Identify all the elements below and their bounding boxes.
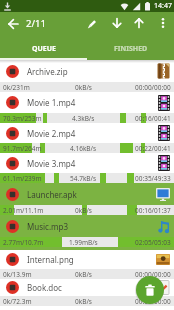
staticText: 4.3kB/s <box>72 114 95 123</box>
staticText: 61.1m/239m <box>3 174 42 183</box>
staticText: 0kB/s <box>75 297 92 306</box>
staticText: Movie 2.mp4 <box>27 128 76 139</box>
staticText: Movie 1.mp4 <box>27 97 76 108</box>
button[interactable]: Launcher.apk <box>0 183 174 215</box>
staticText: 2/11 <box>26 17 46 30</box>
staticText: 2.01m/11.1m <box>3 206 44 215</box>
button[interactable]: FINISHED <box>87 34 174 60</box>
staticText: 00:16/01:37 <box>135 206 171 215</box>
button[interactable]: Movie 3.mp4 <box>0 153 174 183</box>
staticText: 00:00/00:00 <box>135 83 171 92</box>
button[interactable]: Movie 2.mp4 <box>0 123 174 153</box>
staticText: Internal.png <box>27 254 74 265</box>
staticText: 00:00/00:00 <box>135 297 171 306</box>
staticText: 14:47 <box>154 1 172 11</box>
staticText: Launcher.apk <box>27 189 77 200</box>
button[interactable]: QUEUE <box>0 34 87 60</box>
staticText: FINISHED <box>114 44 148 54</box>
button[interactable]: Movie 1.mp4 <box>0 92 174 123</box>
staticText: 70.3m/253m <box>3 114 42 123</box>
button[interactable]: Internal.png <box>0 250 174 279</box>
staticText: Music.mp3 <box>27 221 69 232</box>
button[interactable] <box>131 15 147 31</box>
button[interactable] <box>109 15 125 31</box>
staticText: Book.doc <box>27 282 62 293</box>
staticText: 0k/231m <box>3 83 30 92</box>
staticText: 00:22/00:41 <box>135 144 171 153</box>
button[interactable] <box>155 15 171 31</box>
staticText: Movie 3.mp4 <box>27 158 76 169</box>
staticText: 91.7m/264m <box>3 144 42 153</box>
staticText: 0k/72.3m <box>3 297 32 306</box>
button[interactable] <box>4 15 21 32</box>
staticText: 54.7kB/s <box>70 174 97 183</box>
staticText: 0kB/s <box>75 83 92 92</box>
button[interactable]: Archive.zip <box>0 60 174 92</box>
staticText: 0k/13.9m <box>3 270 32 279</box>
staticText: Archive.zip <box>27 66 68 77</box>
staticText: 2.77m/10.7m <box>3 238 44 247</box>
button[interactable] <box>84 15 100 31</box>
staticText: 00:00/00:00 <box>135 270 171 279</box>
staticText: 00:35/49:33 <box>135 174 171 183</box>
staticText: QUEUE <box>32 44 56 54</box>
staticText: 1.99mB/s <box>69 238 98 247</box>
staticText: 0kB/s <box>75 270 92 279</box>
button[interactable]: Music.mp3 <box>0 215 174 250</box>
staticText: 0kB/s <box>75 206 92 215</box>
button[interactable]: Book.doc <box>0 279 174 306</box>
staticText: 00:16/00:41 <box>135 114 171 123</box>
staticText: 4.16kB/s <box>70 144 97 153</box>
button[interactable] <box>136 276 164 304</box>
staticText: 02:05/05:03 <box>135 238 171 247</box>
